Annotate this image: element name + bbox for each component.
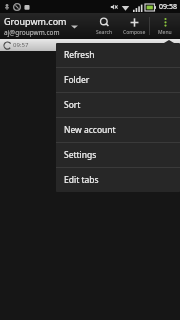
button[interactable]: 09:57: [4, 41, 29, 49]
button[interactable]: Compose: [119, 13, 149, 39]
staticText: Groupwm.com: [4, 15, 67, 27]
button[interactable]: Search: [89, 13, 119, 39]
button[interactable]: Groupwm.com: [0, 14, 82, 38]
staticText: New account: [64, 124, 116, 136]
staticText: aj@groupwm.com: [4, 28, 60, 37]
staticText: 09:57: [13, 41, 29, 49]
button[interactable]: Refresh: [56, 43, 180, 67]
button[interactable]: Folder: [56, 68, 180, 92]
staticText: Sort: [64, 99, 81, 111]
staticText: Refresh: [64, 49, 95, 61]
button[interactable]: New account: [56, 118, 180, 142]
button[interactable]: Menu: [150, 13, 180, 39]
staticText: 09:58: [159, 2, 177, 12]
button[interactable]: Settings: [56, 143, 180, 167]
staticText: Compose: [123, 29, 146, 36]
staticText: Menu: [158, 29, 172, 36]
button[interactable]: Edit tabs: [56, 168, 180, 192]
staticText: Settings: [64, 149, 97, 161]
staticText: Search: [96, 29, 113, 36]
button[interactable]: Sort: [56, 93, 180, 117]
staticText: Edit tabs: [64, 174, 99, 186]
staticText: Folder: [64, 74, 90, 86]
staticText: No mail: [77, 89, 103, 99]
